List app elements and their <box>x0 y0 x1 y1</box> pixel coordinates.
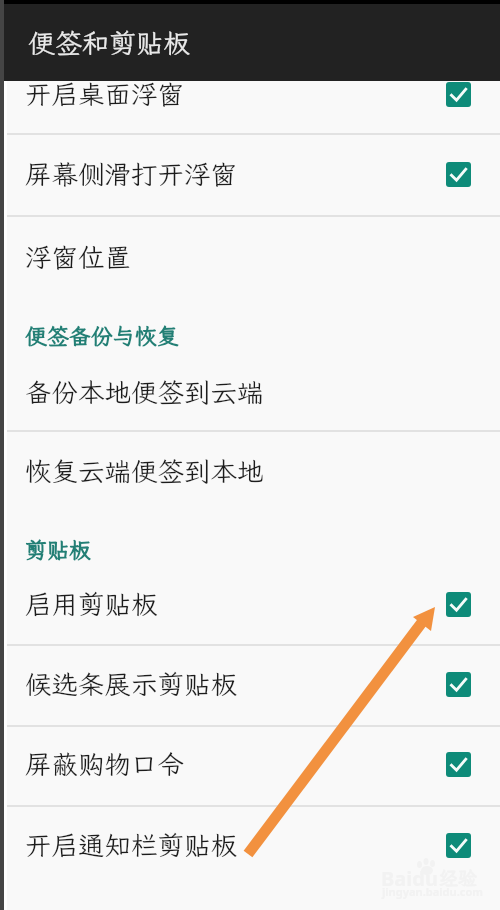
staticText: 开启桌面浮窗 <box>25 77 184 112</box>
button[interactable]: Toggle setting on <box>446 82 471 107</box>
button[interactable]: 屏幕侧滑打开浮窗 <box>0 133 500 215</box>
staticText: jingyan.baidu.com <box>382 884 484 899</box>
button[interactable]: 开启通知栏剪贴板 <box>0 804 500 886</box>
staticText: 便签和剪贴板 <box>28 25 190 61</box>
staticText: 开启通知栏剪贴板 <box>25 828 237 863</box>
button[interactable]: 启用剪贴板 <box>0 567 500 641</box>
staticText: 候选条展示剪贴板 <box>25 667 237 702</box>
staticText: 屏蔽购物口令 <box>25 747 184 782</box>
button[interactable]: 恢复云端便签到本地 <box>0 430 500 512</box>
button[interactable]: Toggle setting on <box>446 752 471 777</box>
button[interactable]: Toggle setting on <box>446 833 471 858</box>
button[interactable]: Toggle setting on <box>446 162 471 187</box>
staticText: 便签备份与恢复 <box>25 321 180 350</box>
staticText: 浮窗位置 <box>25 240 131 275</box>
staticText: 恢复云端便签到本地 <box>25 454 264 489</box>
button[interactable]: Toggle setting on <box>446 592 471 617</box>
button[interactable]: 屏蔽购物口令 <box>0 725 500 804</box>
staticText: 备份本地便签到云端 <box>25 375 264 410</box>
staticText: 启用剪贴板 <box>25 587 158 622</box>
staticText: Baidu <box>381 865 438 892</box>
staticText: 剪贴板 <box>25 535 92 564</box>
staticText: 屏幕侧滑打开浮窗 <box>25 157 237 192</box>
button[interactable]: Toggle setting on <box>446 672 471 697</box>
button[interactable]: 开启桌面浮窗 <box>0 54 500 134</box>
button[interactable]: 浮窗位置 <box>0 216 500 298</box>
button[interactable]: 候选条展示剪贴板 <box>0 645 500 724</box>
button[interactable]: 备份本地便签到云端 <box>0 355 500 429</box>
